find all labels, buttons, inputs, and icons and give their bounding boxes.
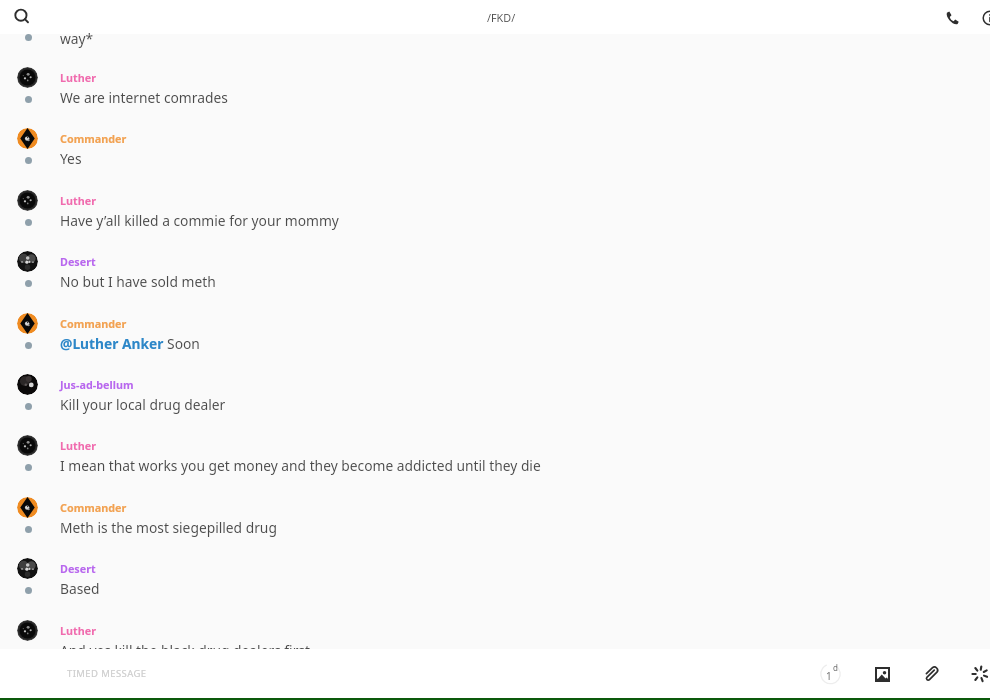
staticText: Commander — [60, 500, 127, 515]
staticText: I mean that works you get money and they… — [60, 456, 541, 475]
button[interactable]: Call — [935, 1, 969, 35]
button[interactable]: Desert — [0, 527, 990, 588]
button[interactable]: Jus-ad-bellum — [0, 343, 990, 404]
staticText: Luther — [60, 438, 97, 453]
button[interactable]: Luther — [0, 159, 990, 220]
staticText: d — [833, 662, 838, 673]
button[interactable]: way* — [0, 25, 990, 49]
staticText: Commander — [60, 131, 127, 146]
button[interactable]: Effects — [966, 660, 990, 688]
staticText: Commander — [60, 316, 127, 331]
button[interactable]: Chat info — [973, 1, 990, 34]
staticText: Meth is the most siegepilled drug — [60, 518, 277, 537]
staticText: Desert — [60, 254, 96, 269]
button[interactable]: Search — [0, 0, 44, 34]
button[interactable]: Commander — [0, 282, 990, 343]
button[interactable]: Send image — [868, 660, 896, 688]
staticText: Luther — [60, 623, 97, 638]
staticText: Based — [60, 579, 100, 598]
button[interactable]: Commander — [0, 97, 990, 158]
staticText: Kill your local drug dealer — [60, 395, 226, 414]
staticText: Luther — [60, 193, 97, 208]
staticText: @Luther Anker Soon — [60, 334, 200, 353]
staticText: And yes kill the black drug dealers firs… — [60, 641, 310, 660]
staticText: Yes — [60, 149, 82, 168]
staticText: TIMED MESSAGE — [67, 667, 147, 680]
staticText: Jus-ad-bellum — [60, 377, 134, 392]
staticText: 1 — [826, 669, 832, 683]
staticText: Have y’all killed a commie for your momm… — [60, 211, 339, 230]
button[interactable]: Attach file — [917, 660, 945, 688]
staticText: Luther — [60, 70, 97, 85]
staticText: way* — [60, 29, 94, 48]
button[interactable]: Luther — [0, 404, 990, 465]
staticText: No but I have sold meth — [60, 272, 216, 291]
button[interactable]: Commander — [0, 466, 990, 527]
staticText: /FKD/ — [487, 10, 516, 25]
staticText: We are internet comrades — [60, 88, 228, 107]
button[interactable]: Desert — [0, 220, 990, 281]
button[interactable]: Luther — [0, 36, 990, 97]
button[interactable]: Luther — [0, 589, 990, 650]
staticText: Desert — [60, 561, 96, 576]
button[interactable]: Timer one day — [818, 660, 846, 688]
